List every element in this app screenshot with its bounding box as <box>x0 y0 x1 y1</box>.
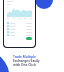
staticText: Trade Multiple <box>13 55 36 59</box>
staticText: with One Click <box>13 63 36 67</box>
button[interactable] <box>7 34 32 36</box>
button[interactable] <box>7 25 32 27</box>
button[interactable] <box>7 31 32 33</box>
button[interactable] <box>7 28 32 30</box>
button[interactable] <box>7 22 32 24</box>
button[interactable]: Buy <box>26 37 32 40</box>
staticText: Exchanges Easily <box>13 59 40 63</box>
